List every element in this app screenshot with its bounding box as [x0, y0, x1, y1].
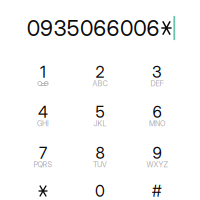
- staticText: 0935066006: [27, 15, 159, 41]
- button[interactable]: [14, 175, 71, 200]
- button[interactable]: 8: [71, 137, 128, 177]
- staticText: DEF: [150, 79, 163, 88]
- staticText: ABC: [92, 79, 107, 88]
- staticText: JKL: [93, 119, 106, 128]
- button[interactable]: 9: [128, 137, 185, 177]
- staticText: 5: [95, 102, 104, 122]
- staticText: PQRS: [33, 160, 52, 169]
- staticText: GHI: [37, 119, 49, 128]
- button[interactable]: #: [128, 175, 185, 200]
- button[interactable]: 5: [71, 96, 128, 136]
- staticText: 6: [152, 102, 161, 122]
- staticText: TUV: [93, 160, 107, 169]
- staticText: 0: [95, 181, 105, 200]
- button[interactable]: 7: [14, 137, 71, 177]
- staticText: MNO: [149, 119, 165, 128]
- staticText: 9: [152, 143, 161, 163]
- staticText: WXYZ: [146, 160, 167, 169]
- staticText: 3: [152, 62, 162, 82]
- staticText: 4: [38, 102, 48, 122]
- button[interactable]: 4: [14, 96, 71, 136]
- staticText: 1: [40, 62, 46, 82]
- button[interactable]: 2: [71, 56, 128, 96]
- button[interactable]: 3: [128, 56, 185, 96]
- staticText: 7: [39, 143, 47, 163]
- staticText: 8: [95, 143, 104, 163]
- staticText: 2: [95, 62, 104, 82]
- button[interactable]: 0: [71, 175, 128, 200]
- button[interactable]: 6: [128, 96, 185, 136]
- button[interactable]: 1: [14, 56, 71, 96]
- staticText: #: [152, 181, 162, 200]
